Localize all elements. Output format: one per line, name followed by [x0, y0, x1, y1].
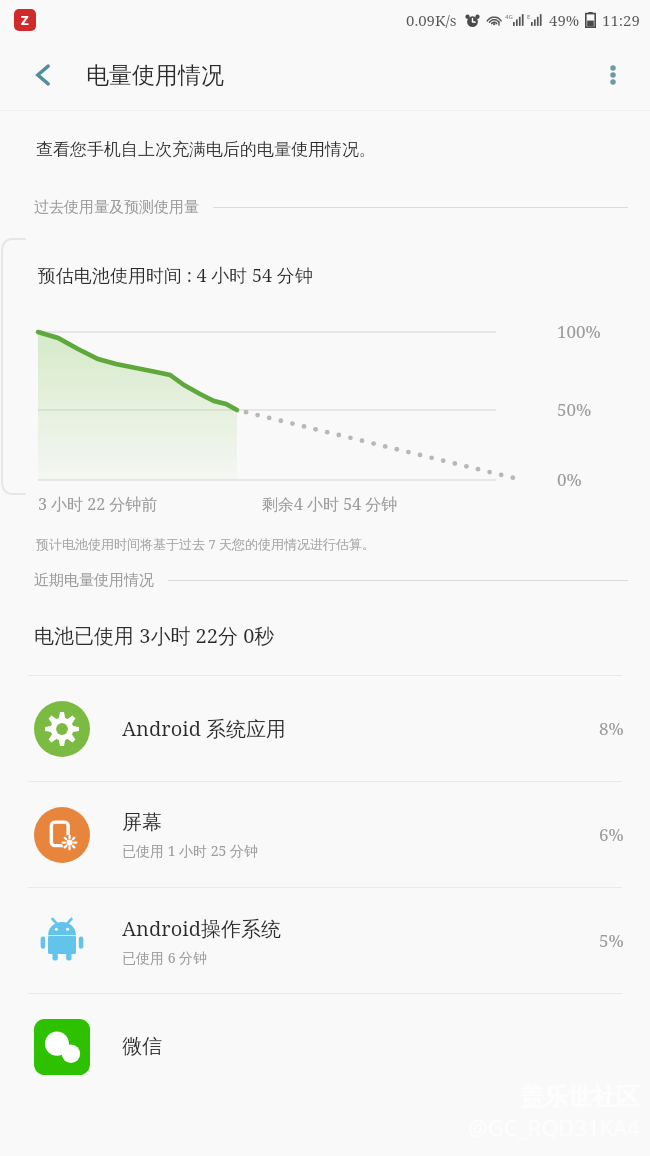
- staticText: 已使用 6 分钟: [122, 948, 208, 967]
- staticText: 49%: [549, 10, 580, 30]
- staticText: 4G: [505, 13, 513, 21]
- staticText: 8%: [599, 717, 624, 740]
- staticText: 近期电量使用情况: [34, 571, 154, 590]
- staticText: 6%: [599, 823, 624, 846]
- staticText: 查看您手机自上次充满电后的电量使用情况。: [36, 139, 376, 160]
- staticText: 预估电池使用时间 : 4 小时 54 分钟: [38, 263, 313, 288]
- staticText: 预计电池使用时间将基于过去 7 天您的使用情况进行估算。: [36, 535, 376, 553]
- button[interactable]: Android操作系统: [0, 888, 650, 993]
- button[interactable]: Back: [16, 48, 70, 102]
- button[interactable]: Android 系统应用: [0, 676, 650, 781]
- button[interactable]: More options: [588, 50, 638, 100]
- staticText: Z: [21, 11, 29, 29]
- staticText: 0%: [557, 468, 582, 491]
- staticText: 5%: [599, 929, 624, 952]
- staticText: 电量使用情况: [86, 61, 224, 90]
- staticText: 剩余4 小时 54 分钟: [262, 493, 398, 515]
- staticText: 100%: [557, 320, 601, 343]
- staticText: E: [527, 13, 531, 21]
- staticText: 过去使用量及预测使用量: [34, 198, 199, 217]
- button[interactable]: 屏幕: [0, 782, 650, 887]
- staticText: Android操作系统: [122, 915, 281, 942]
- staticText: 0.09K/s: [406, 10, 457, 30]
- button[interactable]: 微信: [0, 994, 650, 1099]
- staticText: 微信: [122, 1034, 162, 1059]
- staticText: Android 系统应用: [122, 715, 287, 742]
- staticText: 50%: [557, 398, 592, 421]
- staticText: 3 小时 22 分钟前: [38, 493, 158, 515]
- staticText: 电池已使用 3小时 22分 0秒: [34, 622, 275, 649]
- staticText: 11:29: [602, 10, 640, 30]
- staticText: 已使用 1 小时 25 分钟: [122, 841, 259, 860]
- staticText: 屏幕: [122, 810, 162, 835]
